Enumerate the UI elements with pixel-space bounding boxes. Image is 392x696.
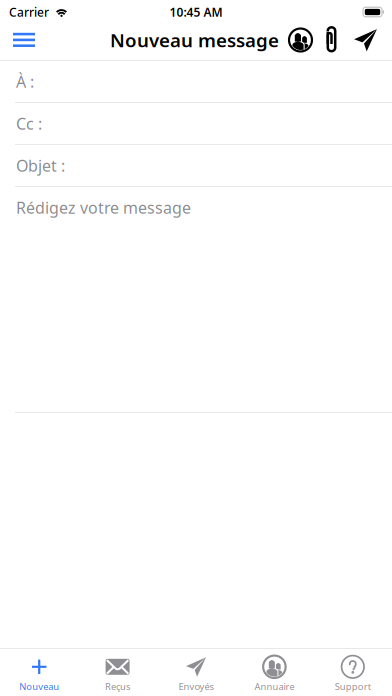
staticText: Reçus xyxy=(105,680,130,693)
button[interactable]: Nouveau xyxy=(0,649,78,696)
staticText: Nouveau message xyxy=(110,28,279,52)
staticText: À : xyxy=(16,71,34,92)
staticText: Annuaire xyxy=(254,680,294,693)
button[interactable]: Joindre un fichier xyxy=(316,22,347,58)
staticText: Nouveau xyxy=(19,680,59,693)
button[interactable]: À : xyxy=(0,61,392,102)
staticText: 10:45 AM xyxy=(169,4,222,20)
button[interactable]: Cc : xyxy=(0,103,392,144)
staticText: Envoyés xyxy=(178,680,213,693)
staticText: Rédigez votre message xyxy=(16,197,191,218)
staticText: Objet : xyxy=(16,155,65,176)
button[interactable]: Contacts xyxy=(285,22,316,58)
staticText: Support xyxy=(335,680,371,693)
staticText: Carrier xyxy=(9,4,49,20)
button[interactable]: Rédigez votre message xyxy=(0,187,392,412)
button[interactable]: Objet : xyxy=(0,145,392,186)
button[interactable]: Support xyxy=(314,649,392,696)
button[interactable]: Annuaire xyxy=(235,649,314,696)
staticText: Cc : xyxy=(16,113,42,134)
button[interactable]: Reçus xyxy=(78,649,157,696)
button[interactable]: Menu xyxy=(7,22,41,58)
button[interactable]: Envoyés xyxy=(157,649,235,696)
button[interactable]: Envoyer xyxy=(347,22,384,58)
